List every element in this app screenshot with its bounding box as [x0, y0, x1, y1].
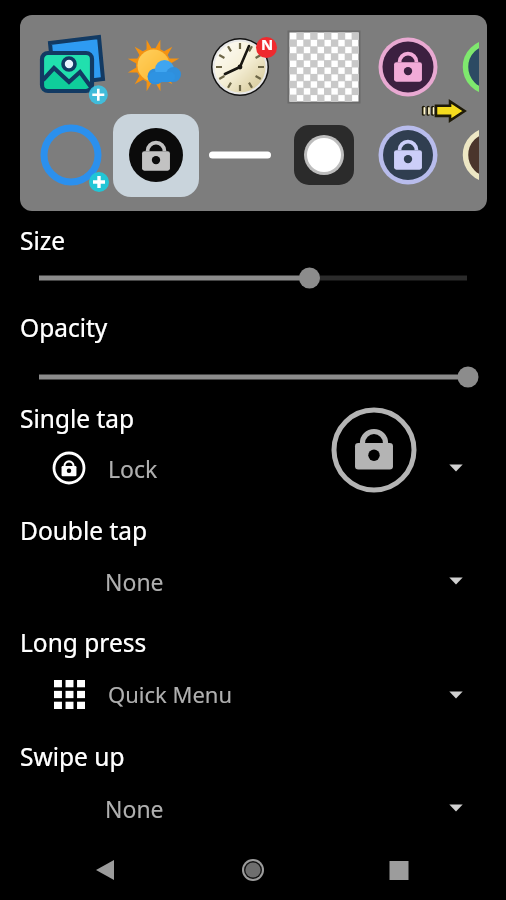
staticText: Long press	[20, 626, 147, 659]
staticText: Quick Menu	[108, 679, 233, 709]
staticText: Size	[20, 224, 66, 257]
button[interactable]: Home	[225, 838, 281, 894]
button[interactable]	[0, 355, 506, 399]
button[interactable]	[0, 256, 506, 300]
button[interactable]: Clock	[198, 25, 282, 109]
button[interactable]: Back	[77, 838, 133, 894]
staticText: Double tap	[20, 514, 148, 547]
staticText: Single tap	[20, 402, 135, 435]
button[interactable]: Green ring	[448, 25, 479, 109]
button[interactable]: None	[0, 555, 506, 607]
button[interactable]: None	[0, 782, 506, 834]
button[interactable]: Lock preview	[332, 408, 416, 492]
button[interactable]: Lock	[0, 442, 506, 494]
button[interactable]: Recents	[371, 838, 427, 894]
button[interactable]: Gallery	[30, 25, 114, 109]
staticText: Lock	[108, 453, 158, 484]
staticText: Swipe up	[20, 740, 125, 773]
button[interactable]: Transparent	[282, 25, 366, 109]
button[interactable]: White dot	[282, 113, 366, 197]
button[interactable]: Expand	[434, 446, 478, 490]
button[interactable]: Expand	[434, 559, 478, 603]
button[interactable]: Black lock	[114, 113, 198, 197]
button[interactable]: Expand	[434, 786, 478, 830]
button[interactable]: Blue circle	[30, 113, 114, 197]
button[interactable]: Blue lock	[366, 113, 450, 197]
button[interactable]: Quick Menu	[0, 668, 506, 720]
button[interactable]: Dash	[198, 113, 282, 197]
button[interactable]: Brown ring	[448, 113, 479, 197]
staticText: None	[105, 793, 164, 824]
staticText: Opacity	[20, 311, 108, 344]
staticText: N	[261, 34, 274, 54]
button[interactable]: Expand	[434, 673, 478, 717]
button[interactable]: Weather	[114, 25, 198, 109]
staticText: None	[105, 566, 164, 597]
button[interactable]: Pink lock	[366, 25, 450, 109]
